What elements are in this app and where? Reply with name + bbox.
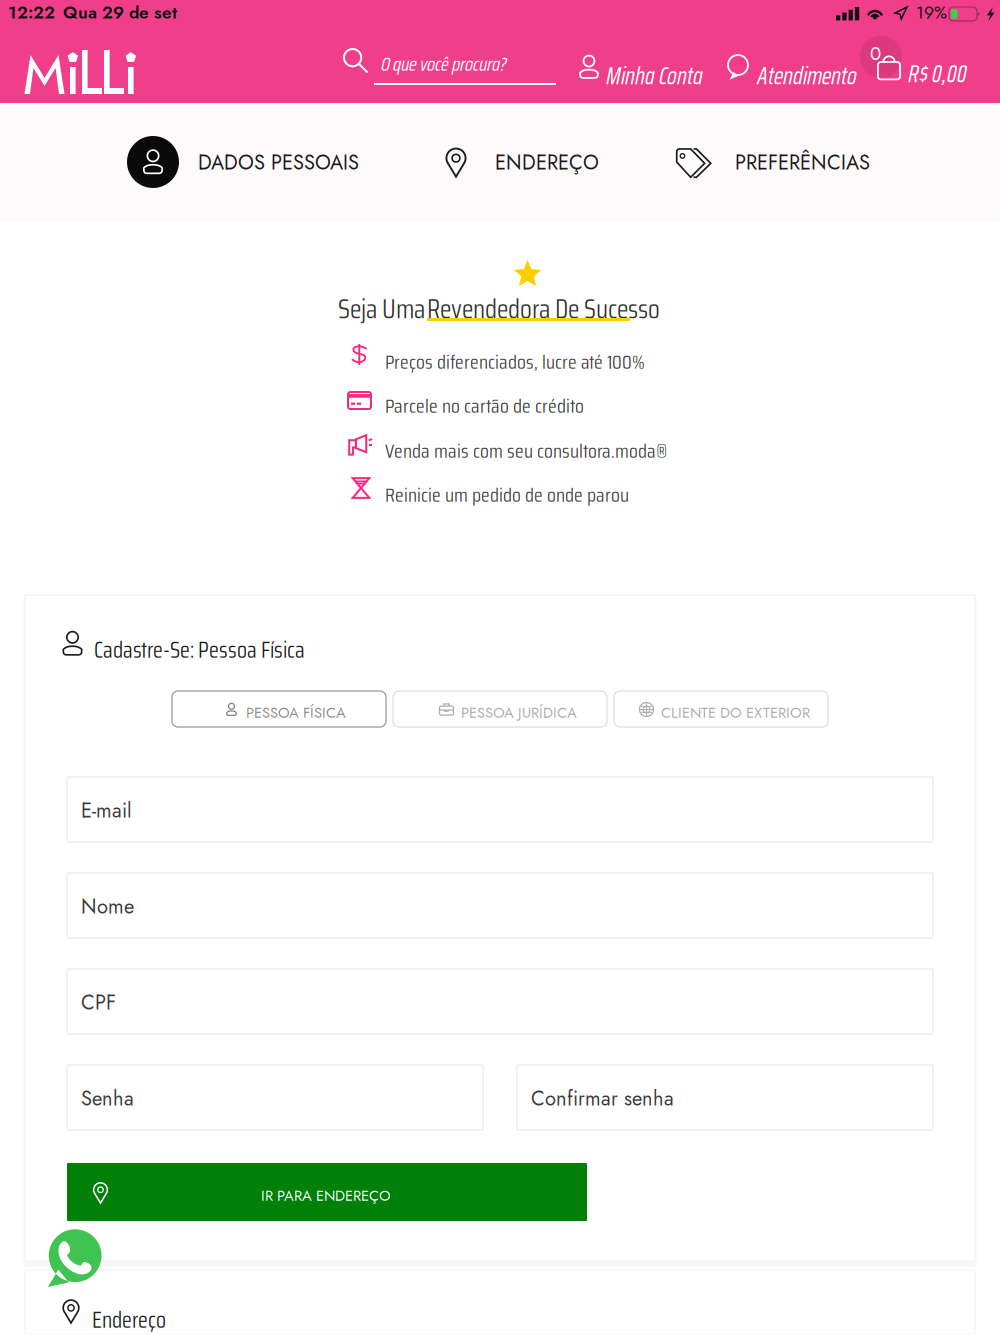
staticText: Nome (81, 892, 134, 921)
staticText: Seja Uma (338, 288, 425, 330)
staticText: E-mail (81, 796, 132, 825)
button[interactable]: WhatsApp (44, 1227, 104, 1289)
staticText: PREFERÊNCIAS (735, 148, 870, 177)
staticText: CLIENTE DO EXTERIOR (661, 702, 810, 723)
staticText: Cadastre-Se: Pessoa Física (94, 632, 305, 668)
staticText: Qua 29 de set (63, 0, 177, 25)
staticText: DADOS PESSOAIS (198, 148, 359, 177)
staticText: R$ 0,00 (908, 55, 967, 93)
button[interactable]: CLIENTE DO EXTERIOR (614, 691, 828, 727)
staticText: CPF (81, 988, 116, 1017)
staticText: Endereço (92, 1302, 166, 1334)
button[interactable]: Confirmar senha (517, 1065, 933, 1130)
staticText: Venda mais com seu consultora.moda® (385, 435, 667, 466)
staticText: Senha (81, 1084, 134, 1113)
staticText: 19% (916, 0, 947, 25)
button[interactable]: PESSOA FÍSICA (172, 691, 386, 727)
button[interactable]: Endereço (58, 1297, 258, 1334)
staticText: IR PARA ENDEREÇO (261, 1185, 391, 1206)
button[interactable]: E-mail (67, 777, 933, 842)
staticText: ENDEREÇO (495, 148, 599, 177)
button[interactable]: IR PARA ENDEREÇO (67, 1163, 587, 1221)
button[interactable]: ENDEREÇO (440, 130, 600, 194)
staticText: O que você procura? (381, 48, 507, 79)
staticText: PESSOA JURÍDICA (461, 702, 577, 723)
button[interactable]: 0 (864, 40, 999, 88)
button[interactable]: PREFERÊNCIAS (673, 130, 878, 194)
button[interactable]: Senha (67, 1065, 483, 1130)
button[interactable]: CPF (67, 969, 933, 1034)
staticText: Reinicie um pedido de onde parou (385, 479, 629, 510)
button[interactable]: O que você procura? (340, 33, 570, 95)
staticText: 0 (870, 40, 881, 67)
staticText: PESSOA FÍSICA (246, 702, 346, 723)
button[interactable]: PESSOA JURÍDICA (393, 691, 607, 727)
button[interactable]: Minha Conta (576, 44, 708, 90)
staticText: Preços diferenciados, lucre até 100% (385, 346, 645, 377)
staticText: Minha Conta (606, 57, 703, 95)
staticText: Parcele no cartão de crédito (385, 390, 584, 421)
staticText: Confirmar senha (531, 1084, 674, 1113)
staticText: Revendedora De Sucesso (427, 288, 660, 330)
button[interactable]: Atendimento (726, 44, 866, 90)
button[interactable]: MiLLi home (24, 50, 136, 100)
button[interactable]: Nome (67, 873, 933, 938)
staticText: Atendimento (757, 57, 857, 95)
staticText: 12:22 (8, 0, 55, 25)
button[interactable]: DADOS PESSOAIS (127, 130, 407, 194)
